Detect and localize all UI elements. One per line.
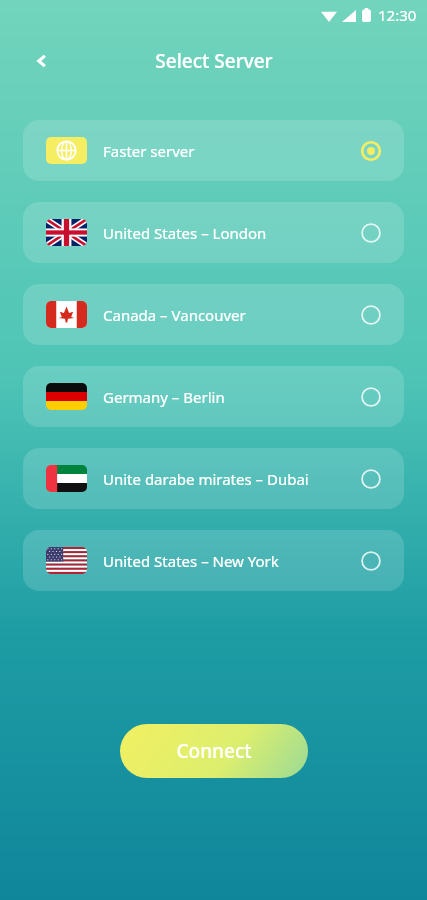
button[interactable]: United States – New York: [23, 530, 404, 591]
staticText: Select Server: [155, 48, 273, 74]
button[interactable]: Unite darabe mirates – Dubai: [23, 448, 404, 509]
staticText: Unite darabe mirates – Dubai: [103, 469, 309, 489]
button[interactable]: Germany – Berlin: [23, 366, 404, 427]
button[interactable]: Faster server: [23, 120, 404, 181]
button[interactable]: Back: [22, 41, 62, 81]
button[interactable]: Canada – Vancouver: [23, 284, 404, 345]
staticText: Connect: [176, 738, 252, 764]
staticText: 12:30: [378, 5, 417, 25]
staticText: Germany – Berlin: [103, 387, 225, 407]
staticText: Faster server: [103, 141, 195, 161]
button[interactable]: United States – London: [23, 202, 404, 263]
staticText: United States – New York: [103, 551, 279, 571]
staticText: Canada – Vancouver: [103, 305, 246, 325]
staticText: United States – London: [103, 223, 267, 243]
button[interactable]: Connect: [120, 724, 308, 778]
